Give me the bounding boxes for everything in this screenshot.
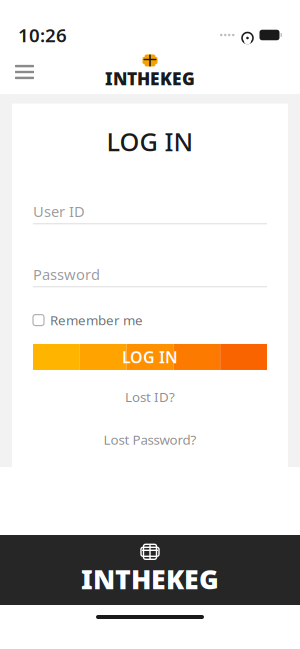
staticText: Lost Password?	[103, 431, 196, 448]
button[interactable]: Remember me	[33, 308, 267, 332]
staticText: Remember me	[50, 311, 143, 329]
button[interactable]: LOG IN	[33, 344, 267, 370]
button[interactable]: Lost Password?	[33, 427, 267, 452]
staticText: INTHEKEG	[105, 67, 195, 90]
button[interactable]: Menu	[7, 55, 42, 89]
button[interactable]: Lost ID?	[33, 384, 267, 410]
staticText: 10:26	[18, 23, 67, 47]
staticText: LOG IN	[122, 346, 178, 367]
staticText: INTHEKEG	[81, 561, 219, 597]
staticText: Lost ID?	[125, 388, 175, 406]
staticText: User ID	[33, 201, 85, 221]
staticText: LOG IN	[106, 125, 193, 158]
staticText: Password	[33, 264, 100, 284]
